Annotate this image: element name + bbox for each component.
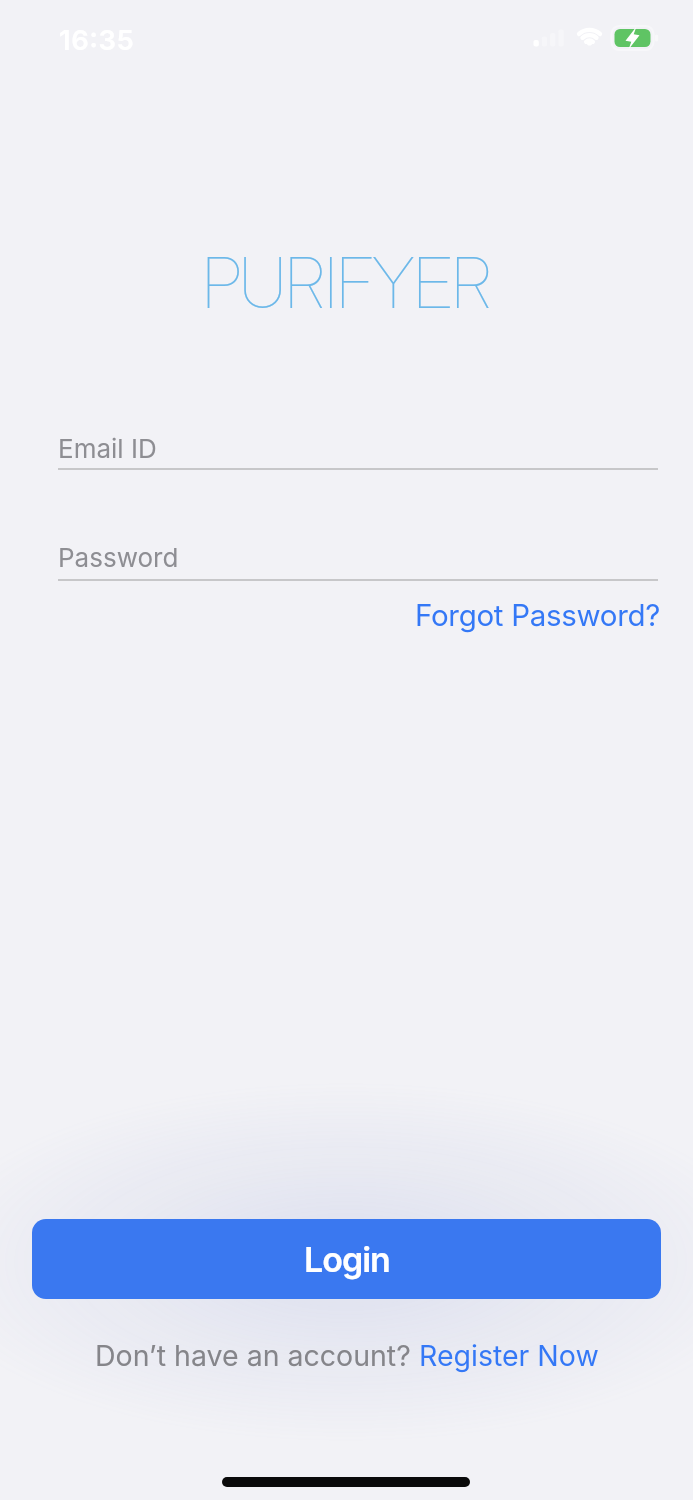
staticText: Forgot Password? bbox=[415, 597, 661, 633]
staticText: Password bbox=[58, 542, 179, 573]
staticText: Email ID bbox=[58, 433, 157, 464]
staticText: Login bbox=[304, 1239, 390, 1280]
staticText: Register Now bbox=[419, 1338, 599, 1372]
staticText: 16:35 bbox=[59, 23, 135, 56]
button[interactable]: Password bbox=[58, 534, 658, 586]
button[interactable]: Email ID bbox=[58, 425, 658, 475]
staticText: PURIFYER bbox=[202, 240, 491, 325]
staticText: Don’t have an account? bbox=[95, 1338, 419, 1372]
button[interactable]: Register Now bbox=[419, 1338, 599, 1372]
button[interactable]: Forgot Password? bbox=[415, 597, 661, 633]
button[interactable]: Login bbox=[32, 1219, 661, 1299]
